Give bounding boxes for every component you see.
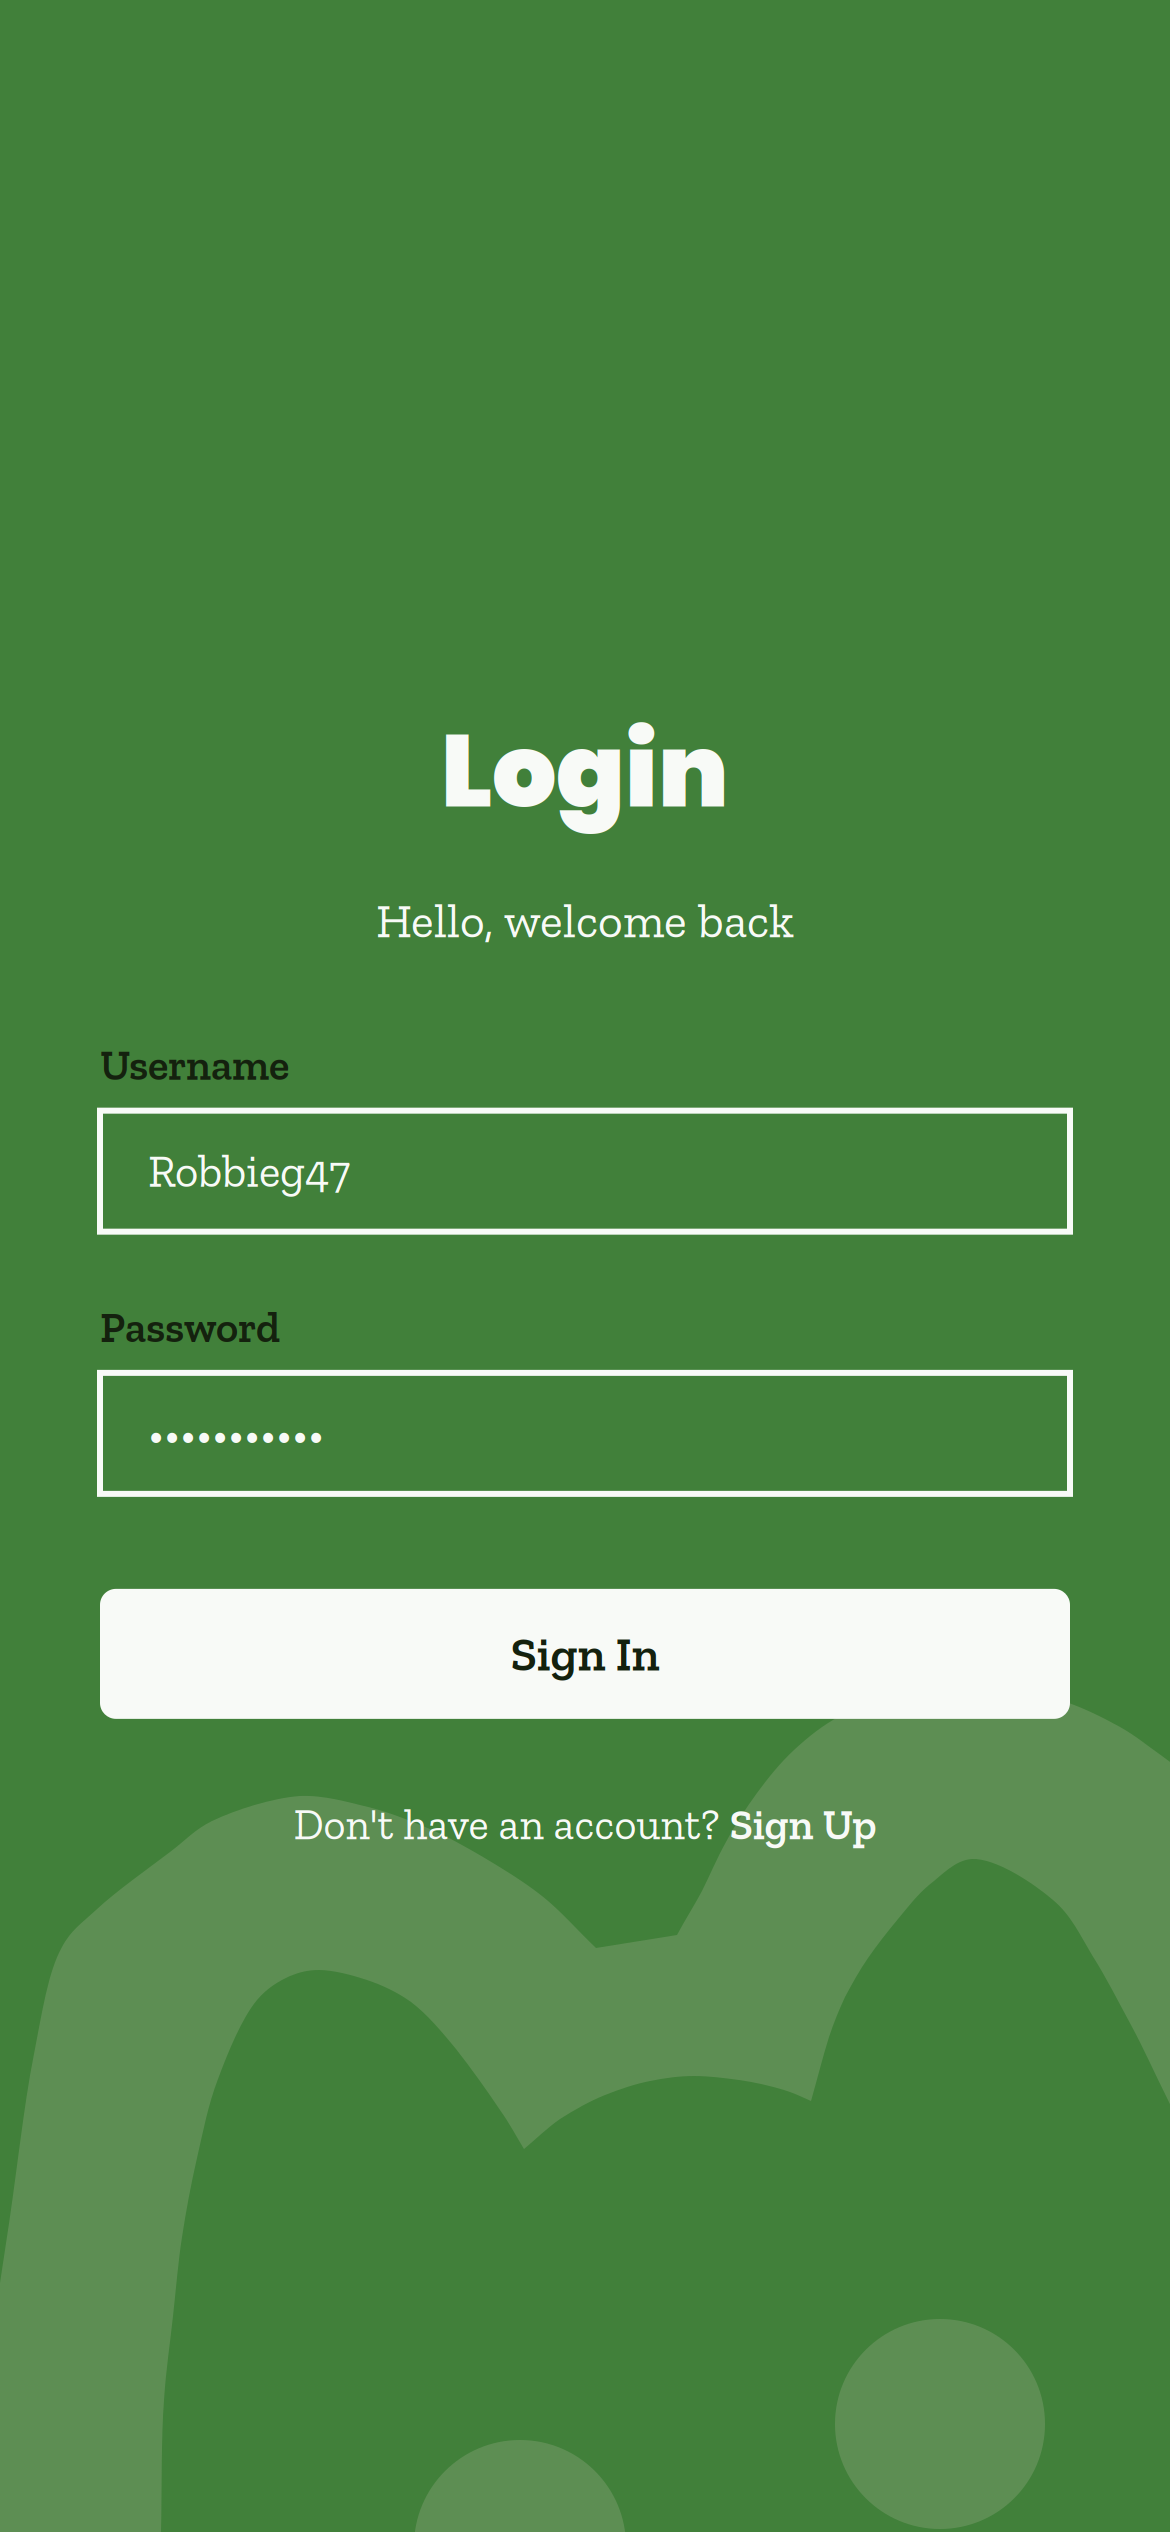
staticText: Password [100, 1302, 280, 1353]
staticText: Don't have an account? [293, 1799, 729, 1850]
button[interactable]: Sign In [100, 1589, 1070, 1719]
staticText: Sign Up [729, 1799, 876, 1850]
staticText: Robbieg47 [148, 1144, 350, 1198]
staticText: Sign In [510, 1625, 659, 1683]
staticText: ••••••••••• [148, 1406, 324, 1461]
button[interactable]: Don't have an account? [293, 1799, 876, 1850]
staticText: Hello, welcome back [376, 892, 794, 949]
staticText: Username [100, 1039, 289, 1091]
staticText: Login [441, 700, 729, 842]
